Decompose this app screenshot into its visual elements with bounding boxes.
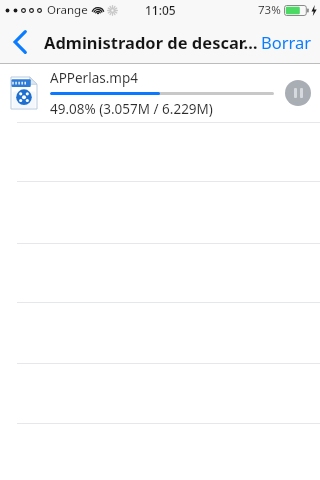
staticText: Orange xyxy=(47,2,88,18)
button[interactable]: Pause download xyxy=(285,80,311,106)
staticText: Borrar xyxy=(261,31,312,53)
staticText: 11:05 xyxy=(145,2,176,18)
button[interactable]: APPerlas.mp4 xyxy=(0,64,320,122)
staticText: 49.08% (3.057M / 6.229M) xyxy=(50,100,213,118)
button[interactable]: Back xyxy=(0,20,40,63)
staticText: Administrador de descar… xyxy=(44,31,258,53)
staticText: APPerlas.mp4 xyxy=(50,69,138,87)
button[interactable]: Borrar xyxy=(253,20,320,63)
staticText: 73% xyxy=(258,2,281,18)
